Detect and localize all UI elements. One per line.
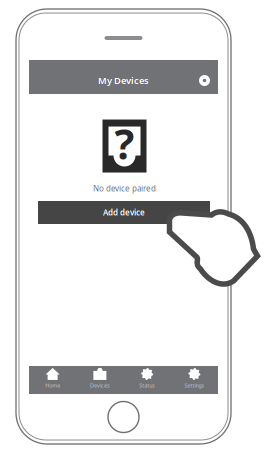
- staticText: Add device: [103, 207, 145, 218]
- staticText: Home: [45, 382, 60, 389]
- staticText: Status: [139, 382, 155, 389]
- button[interactable]: Add device: [195, 71, 213, 89]
- button[interactable]: Add device: [38, 201, 210, 224]
- staticText: ?: [114, 116, 134, 171]
- button[interactable]: Status: [123, 366, 171, 394]
- button[interactable]: Home: [29, 366, 76, 394]
- staticText: Settings: [184, 382, 204, 389]
- staticText: Devices: [90, 382, 110, 389]
- staticText: No device paired: [93, 183, 156, 194]
- button[interactable]: Settings: [171, 366, 218, 394]
- staticText: My Devices: [98, 74, 149, 87]
- button[interactable]: Devices: [76, 366, 123, 394]
